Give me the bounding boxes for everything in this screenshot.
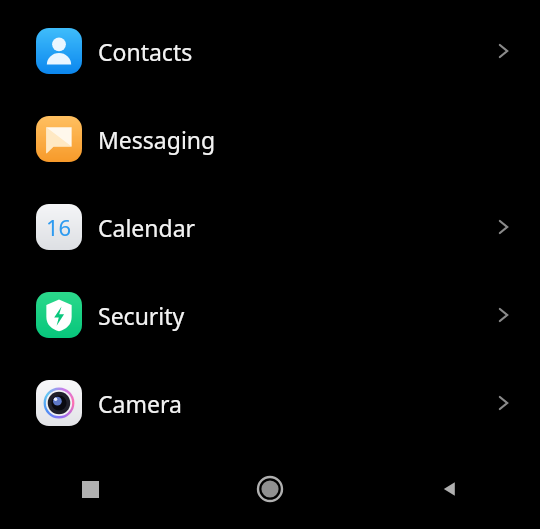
button[interactable]: Security (0, 271, 540, 359)
button[interactable]: Camera (0, 359, 540, 447)
button[interactable]: Home (180, 457, 360, 521)
staticText: Calendar (98, 212, 196, 243)
staticText: Messaging (98, 124, 216, 155)
staticText: 16 (46, 212, 72, 242)
staticText: Contacts (98, 36, 193, 67)
button[interactable]: Contacts (0, 7, 540, 95)
button[interactable]: Back (360, 457, 540, 521)
button[interactable]: Messaging (0, 95, 540, 183)
button[interactable]: 16 (0, 183, 540, 271)
button[interactable]: Recents (0, 457, 180, 521)
staticText: Security (98, 300, 185, 331)
staticText: Camera (98, 388, 182, 419)
